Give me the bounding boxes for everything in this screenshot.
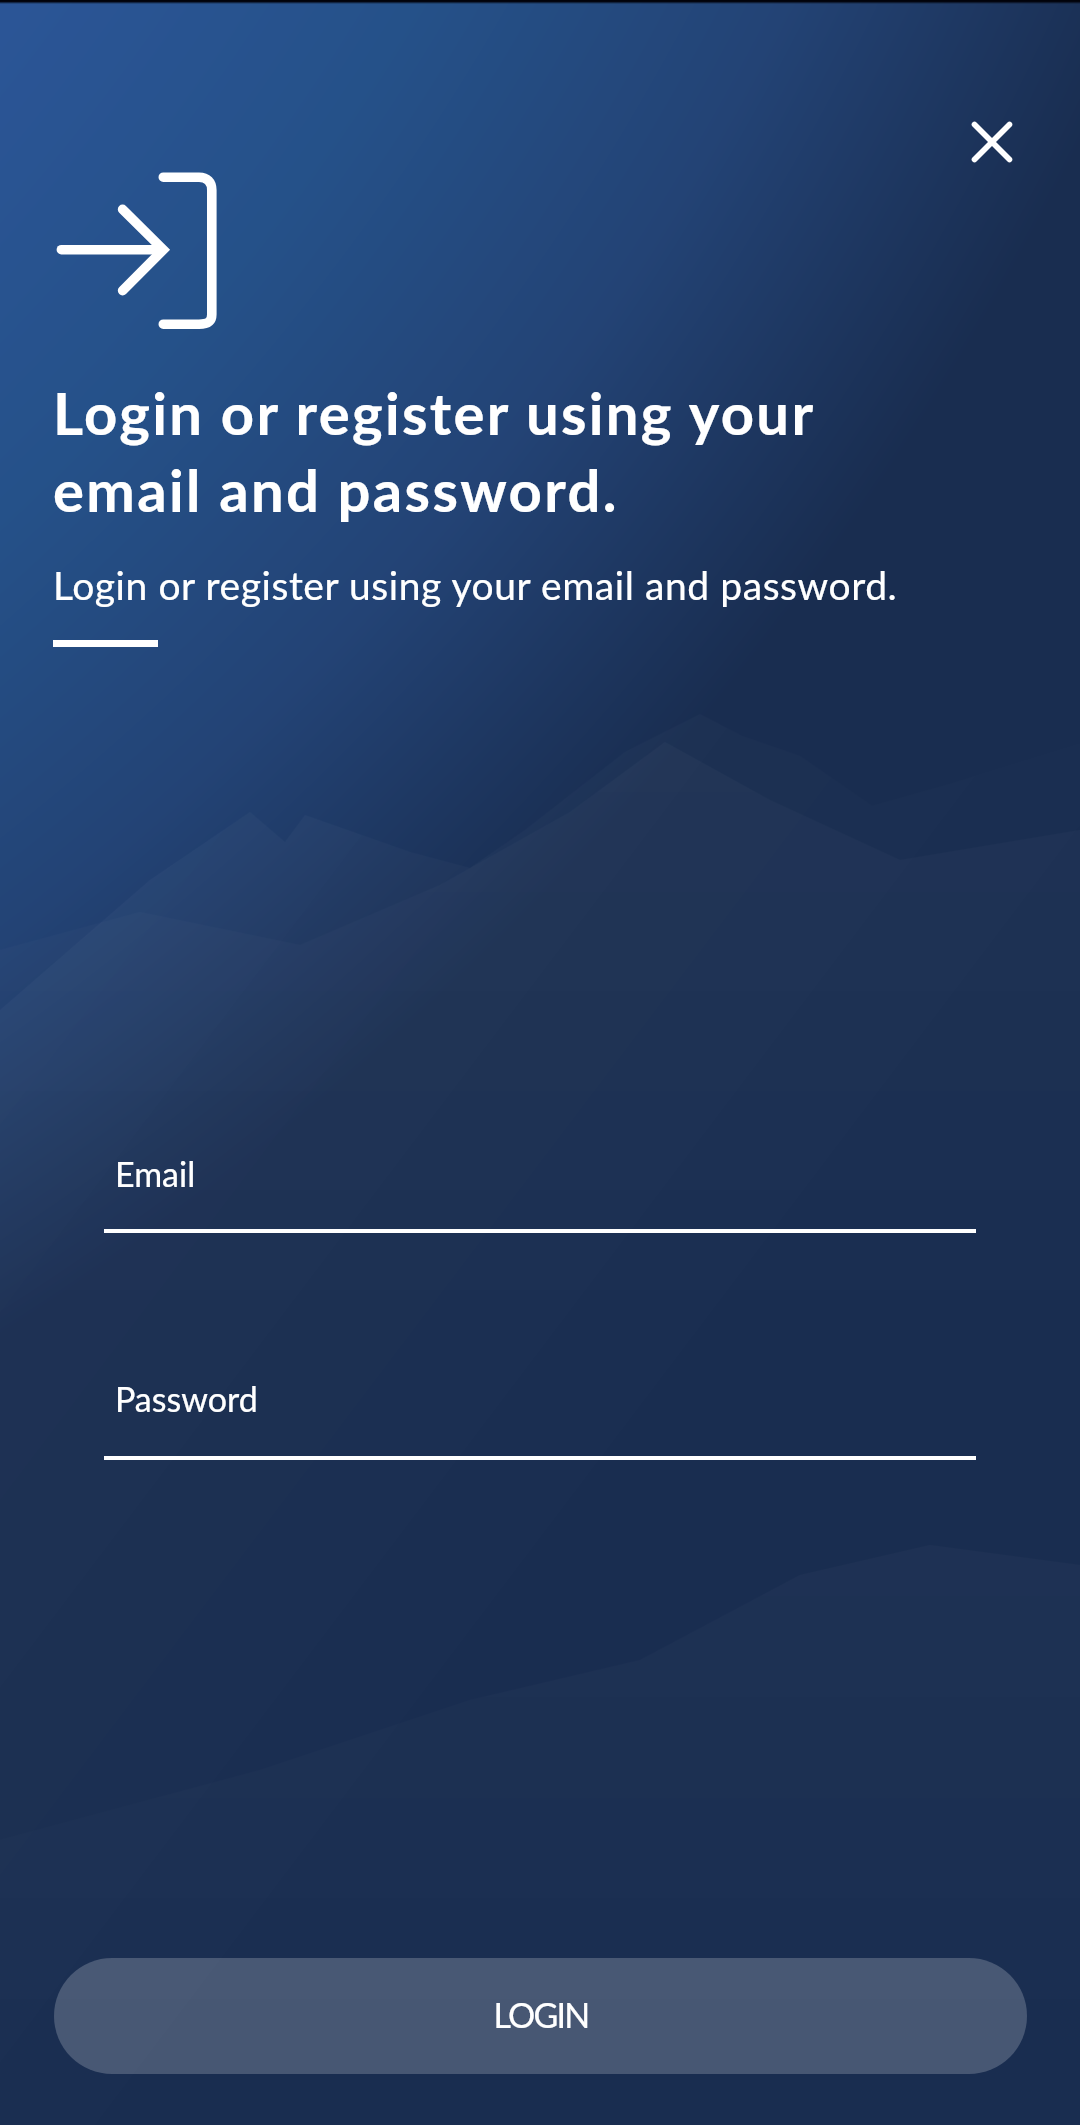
staticText: Password bbox=[115, 1378, 258, 1419]
button[interactable]: Password bbox=[104, 1378, 976, 1423]
button[interactable]: Email bbox=[104, 1153, 976, 1198]
staticText: Login or register using your email and p… bbox=[53, 378, 816, 524]
button[interactable]: LOGIN bbox=[54, 1958, 1027, 2074]
staticText: Email bbox=[115, 1153, 196, 1194]
staticText: Login or register using your email and p… bbox=[53, 562, 898, 609]
button[interactable]: Close bbox=[942, 92, 1042, 192]
staticText: LOGIN bbox=[493, 1994, 589, 2035]
